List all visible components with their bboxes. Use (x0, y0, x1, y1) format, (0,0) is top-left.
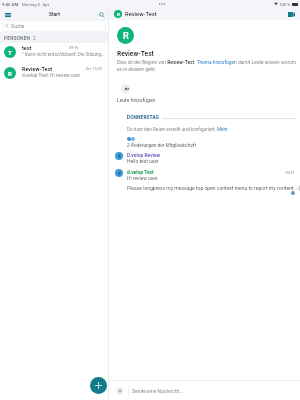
button[interactable]: Video call (286, 9, 297, 20)
staticText: Please longpress my message top open con… (127, 185, 300, 191)
staticText: 15:31 (285, 170, 295, 175)
staticText: 09:16 (69, 45, 79, 49)
staticText: Leute hinzufügen (117, 97, 156, 103)
button[interactable]: Search (96, 9, 107, 20)
button[interactable]: Menu (2, 9, 13, 20)
staticText: DONNERSTAG (127, 115, 160, 121)
staticText: test (22, 45, 32, 51)
button[interactable]: R (0, 64, 108, 85)
staticText: Review-Test (125, 11, 157, 18)
staticText: R (8, 70, 12, 77)
staticText: Montag 5. Apr (22, 2, 50, 7)
staticText: Sende eine Nachricht... (132, 388, 184, 394)
staticText: 9:40 AM (2, 2, 19, 7)
staticText: Hi review user. (127, 175, 159, 181)
staticText: R (123, 30, 129, 41)
staticText: Start (49, 11, 60, 17)
button[interactable]: T (0, 43, 108, 64)
staticText: Hello test user (127, 158, 159, 164)
staticText: Du hast den Raum erstellt und konfigurie… (127, 127, 228, 133)
staticText: PERSONEN (4, 35, 31, 41)
staticText: Dies ist der Beginn von Review-Test. The… (117, 60, 300, 72)
staticText: Review-Test (117, 50, 154, 58)
staticText: 2 (33, 35, 36, 41)
button[interactable]: Suche (2, 20, 106, 32)
staticText: d (118, 154, 121, 159)
staticText: " Kann nicht entschlüsselt: Die Sitzung.… (22, 52, 105, 58)
staticText: d.velop Test (127, 169, 154, 175)
staticText: Review-Test (22, 66, 53, 72)
button[interactable]: Add people (121, 84, 131, 94)
button[interactable]: Attach (115, 386, 124, 395)
button[interactable]: New chat (90, 377, 107, 394)
staticText: D.velop Review (127, 152, 161, 158)
staticText: T (8, 49, 12, 56)
staticText: 100 % (279, 2, 291, 7)
staticText: d (118, 171, 121, 176)
staticText: 2 Änderungen der Mitgliedschaft (127, 142, 196, 148)
staticText: Do. 15:32 (86, 66, 103, 70)
button[interactable]: R (114, 10, 157, 18)
staticText: d.velop Test: Hi review user. (22, 73, 82, 79)
staticText: Suche (11, 23, 25, 29)
staticText: R (117, 12, 120, 17)
